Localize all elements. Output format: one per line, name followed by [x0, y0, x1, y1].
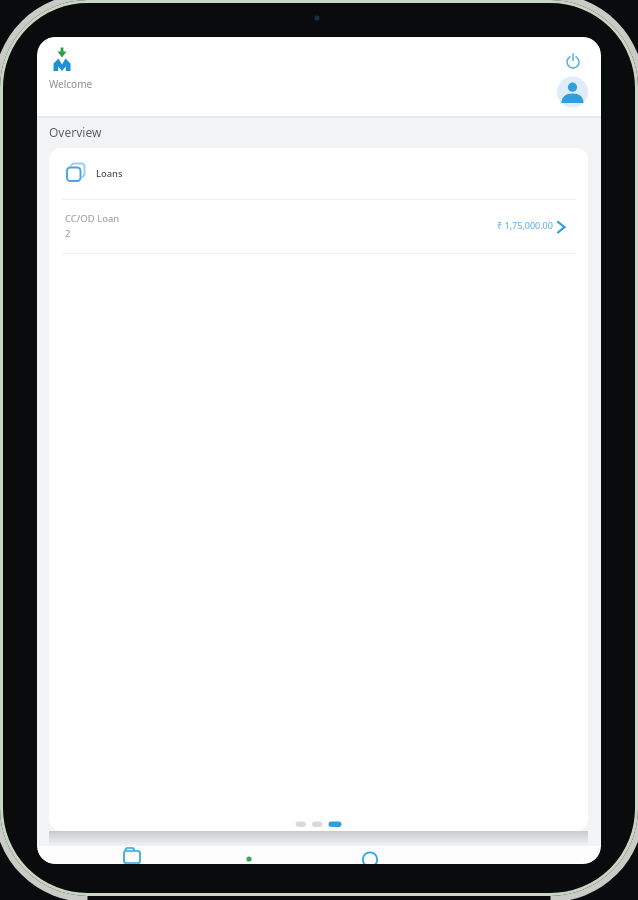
staticText: CC/OD Loan — [65, 212, 120, 225]
button[interactable] — [49, 148, 588, 831]
staticText: ₹ 1,75,000.00 — [497, 219, 553, 231]
staticText: Loans — [96, 167, 123, 180]
button[interactable]: ₹ 1,75,000.00 — [380, 217, 553, 233]
staticText: Overview — [49, 124, 102, 140]
button[interactable] — [110, 845, 156, 864]
button[interactable] — [347, 845, 393, 864]
button[interactable] — [557, 76, 589, 108]
staticText: 2 — [65, 227, 71, 240]
staticText: Welcome — [49, 77, 93, 91]
button[interactable] — [226, 845, 272, 864]
button[interactable] — [563, 51, 583, 71]
button[interactable] — [49, 203, 588, 253]
